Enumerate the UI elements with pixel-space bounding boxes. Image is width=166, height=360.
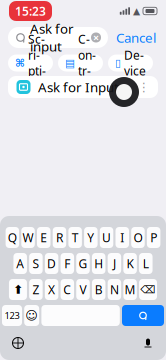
button[interactable]: B [92, 279, 105, 300]
staticText: V [79, 281, 86, 297]
button[interactable]: Q [6, 227, 19, 248]
staticText: O [133, 229, 142, 245]
staticText: × [93, 30, 99, 45]
button[interactable]: H [92, 253, 105, 274]
staticText: Scripting [28, 31, 46, 95]
button[interactable]: 123 [2, 305, 22, 326]
button[interactable]: Y [84, 227, 98, 248]
staticText: K [127, 255, 134, 271]
button[interactable]: O [131, 227, 145, 248]
staticText: Z [32, 281, 39, 297]
staticText: W [22, 229, 33, 245]
button[interactable]: F [60, 253, 74, 274]
staticText: J [113, 255, 116, 271]
button[interactable]: D [45, 253, 58, 274]
button[interactable]: ▯ [108, 54, 153, 71]
button[interactable]: Ask for Input [8, 76, 158, 98]
button[interactable]: E [37, 227, 50, 248]
button[interactable]: Next keyboard [9, 334, 27, 352]
button[interactable]: G [76, 253, 90, 274]
button[interactable]: Search [122, 305, 164, 326]
staticText: ⬆ [13, 283, 23, 296]
staticText: S [32, 255, 39, 271]
button[interactable]: Emoji [24, 305, 39, 326]
staticText: Cancel [116, 29, 156, 46]
staticText: Q [8, 229, 17, 245]
button[interactable]: R [53, 227, 66, 248]
button[interactable]: Delete [139, 279, 157, 300]
button[interactable]: I [115, 227, 129, 248]
button[interactable]: S [29, 253, 43, 274]
staticText: ☺ [25, 309, 38, 322]
staticText: U [102, 229, 111, 245]
staticText: E [40, 229, 47, 245]
button[interactable]: K [123, 253, 137, 274]
button[interactable]: C [60, 279, 74, 300]
button[interactable]: A [13, 253, 27, 274]
button[interactable]: Dictate [139, 334, 157, 352]
staticText: ⌫ [141, 283, 156, 295]
button[interactable]: Shift [9, 279, 27, 300]
button[interactable]: Cancel [114, 27, 158, 48]
staticText: M [125, 281, 136, 297]
staticText: C [63, 281, 71, 297]
button[interactable]: X [45, 279, 58, 300]
staticText: ▲ [133, 6, 140, 16]
staticText: X [48, 281, 55, 297]
button[interactable]: T [68, 227, 82, 248]
button[interactable]: M [123, 279, 137, 300]
button[interactable]: U [100, 227, 113, 248]
staticText: A [16, 255, 24, 271]
staticText: L [143, 255, 149, 271]
staticText: Controls [78, 31, 96, 95]
staticText: B [95, 281, 103, 297]
staticText: N [110, 281, 119, 297]
button[interactable]: N [108, 279, 121, 300]
button[interactable]: Ask for input [8, 27, 108, 48]
staticText: R [56, 229, 63, 245]
staticText: G [78, 255, 87, 271]
staticText: Y [87, 229, 94, 245]
staticText [78, 300, 84, 330]
button[interactable]: J [108, 253, 121, 274]
button[interactable]: W [21, 227, 35, 248]
staticText: F [64, 255, 70, 271]
staticText: D [47, 255, 56, 271]
staticText: T [72, 229, 79, 245]
button[interactable]: ▤ [58, 54, 103, 71]
staticText: Ask for Input [38, 78, 119, 96]
staticText: I [120, 229, 124, 245]
button[interactable]: Space [41, 305, 120, 326]
staticText: H [94, 255, 103, 271]
button[interactable]: P [147, 227, 160, 248]
staticText: 123 [4, 309, 19, 322]
staticText: Device [124, 47, 146, 79]
button[interactable]: ⌘ [8, 54, 53, 71]
staticText: ⌘ [15, 57, 25, 69]
staticText: Ask for input [30, 20, 74, 55]
button[interactable]: Z [29, 279, 43, 300]
staticText: ⋮ [138, 80, 150, 94]
staticText: P [150, 229, 157, 245]
staticText: ▯ [115, 57, 121, 69]
staticText: ▤ [65, 57, 75, 69]
button[interactable]: L [139, 253, 153, 274]
button[interactable]: V [76, 279, 90, 300]
staticText: 15:23 [15, 3, 46, 19]
